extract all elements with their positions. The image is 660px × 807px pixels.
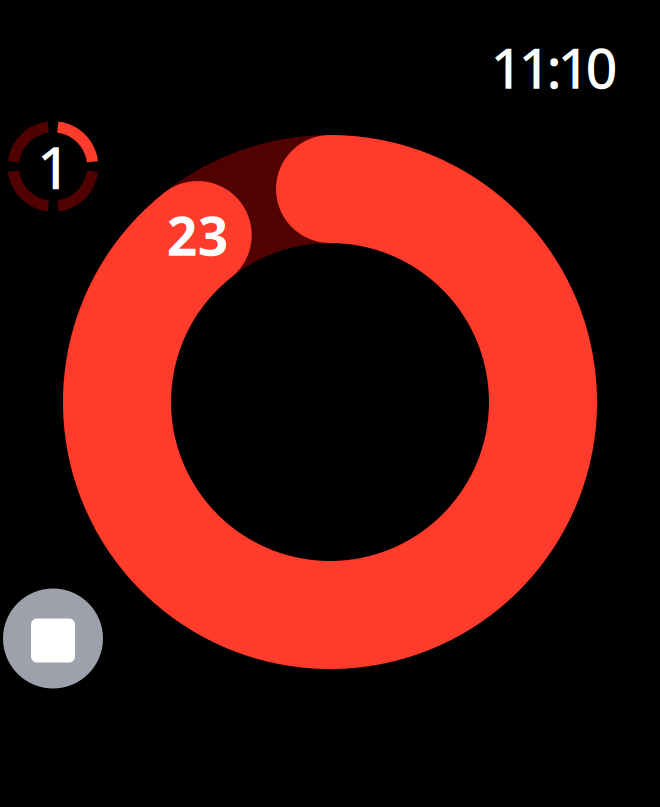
- staticText: 23: [167, 200, 229, 270]
- staticText: 11:10: [490, 30, 617, 104]
- button[interactable]: Stop workout: [3, 588, 103, 688]
- staticText: 1: [37, 127, 71, 205]
